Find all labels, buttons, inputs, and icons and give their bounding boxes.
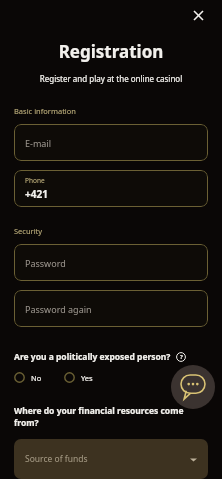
staticText: +421 — [25, 187, 48, 201]
staticText: E-mail — [25, 137, 52, 149]
button[interactable]: Close — [188, 5, 208, 25]
staticText: Registration — [14, 40, 208, 63]
staticText: Register and play at the online casinol — [14, 73, 208, 84]
button[interactable]: Yes — [64, 372, 97, 383]
staticText: Basic information — [14, 106, 76, 116]
staticText: Source of funds — [25, 453, 88, 465]
button[interactable]: Source of funds — [14, 439, 208, 479]
button[interactable]: Chat support — [171, 365, 215, 409]
staticText: Phone — [25, 176, 45, 185]
staticText: No — [31, 373, 42, 383]
button[interactable]: Password — [14, 244, 208, 281]
staticText: Are you a politically exposed person? — [14, 351, 171, 363]
button[interactable]: Help — [175, 351, 187, 363]
staticText: Security — [14, 226, 43, 236]
button[interactable]: Password again — [14, 290, 208, 327]
button[interactable]: E-mail — [14, 124, 208, 161]
staticText: Where do your financial resources come f… — [14, 405, 208, 429]
staticText: Password again — [25, 303, 92, 315]
button[interactable]: Phone — [14, 170, 208, 207]
button[interactable]: No — [14, 372, 46, 383]
staticText: Password — [25, 257, 66, 269]
staticText: ? — [180, 353, 183, 361]
staticText: Yes — [81, 373, 93, 383]
